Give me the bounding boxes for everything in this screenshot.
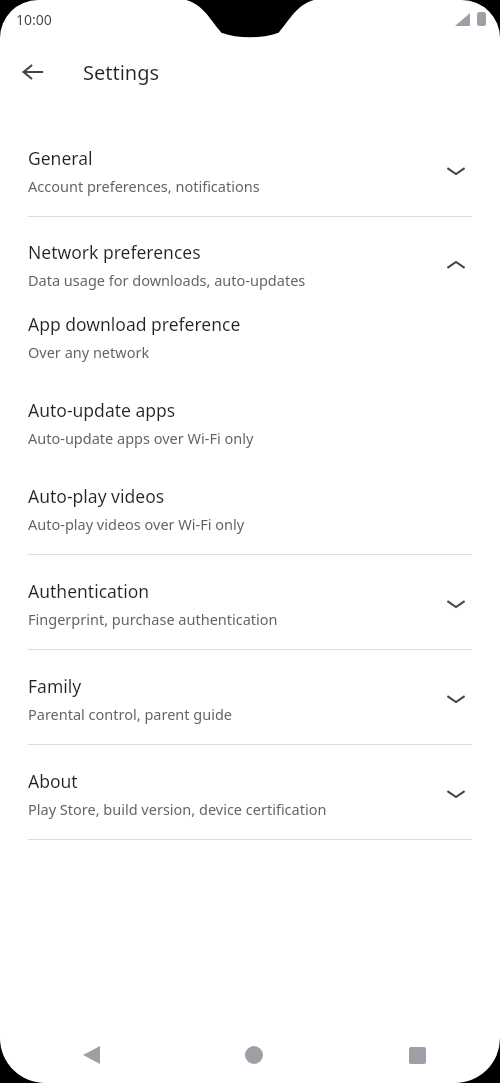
staticText: Parental control, parent guide bbox=[28, 704, 233, 724]
button[interactable]: Expand Family bbox=[436, 679, 476, 719]
button[interactable]: Auto-play videos bbox=[0, 484, 500, 534]
staticText: Family bbox=[28, 674, 82, 698]
staticText: General bbox=[28, 146, 93, 170]
staticText: Fingerprint, purchase authentication bbox=[28, 609, 278, 629]
staticText: Account preferences, notifications bbox=[28, 176, 260, 196]
staticText: 10:00 bbox=[16, 10, 52, 29]
button[interactable]: About bbox=[0, 769, 500, 819]
button[interactable]: Auto-update apps bbox=[0, 398, 500, 448]
button[interactable]: Network preferences bbox=[0, 240, 500, 290]
staticText: Auto-play videos over Wi-Fi only bbox=[28, 514, 245, 534]
button[interactable]: Expand About bbox=[436, 774, 476, 814]
button[interactable]: General bbox=[0, 146, 500, 196]
button[interactable]: Expand General bbox=[436, 151, 476, 191]
staticText: Data usage for downloads, auto-updates bbox=[28, 270, 306, 290]
button[interactable]: Expand Authentication bbox=[436, 584, 476, 624]
staticText: Auto-update apps bbox=[28, 398, 176, 422]
button[interactable]: Authentication bbox=[0, 579, 500, 629]
button[interactable]: Back bbox=[67, 1031, 115, 1079]
button[interactable]: Back bbox=[12, 51, 54, 93]
staticText: Auto-play videos bbox=[28, 484, 165, 508]
button[interactable]: Family bbox=[0, 674, 500, 724]
button[interactable]: Home bbox=[230, 1031, 278, 1079]
button[interactable]: App download preference bbox=[0, 312, 500, 362]
staticText: App download preference bbox=[28, 312, 241, 336]
staticText: Network preferences bbox=[28, 240, 201, 264]
staticText: Authentication bbox=[28, 579, 150, 603]
staticText: About bbox=[28, 769, 78, 793]
button[interactable]: Recent apps bbox=[393, 1031, 441, 1079]
staticText: Play Store, build version, device certif… bbox=[28, 799, 327, 819]
staticText: Settings bbox=[83, 59, 160, 86]
button[interactable]: Collapse Network preferences bbox=[436, 245, 476, 285]
staticText: Auto-update apps over Wi-Fi only bbox=[28, 428, 254, 448]
staticText: Over any network bbox=[28, 342, 150, 362]
